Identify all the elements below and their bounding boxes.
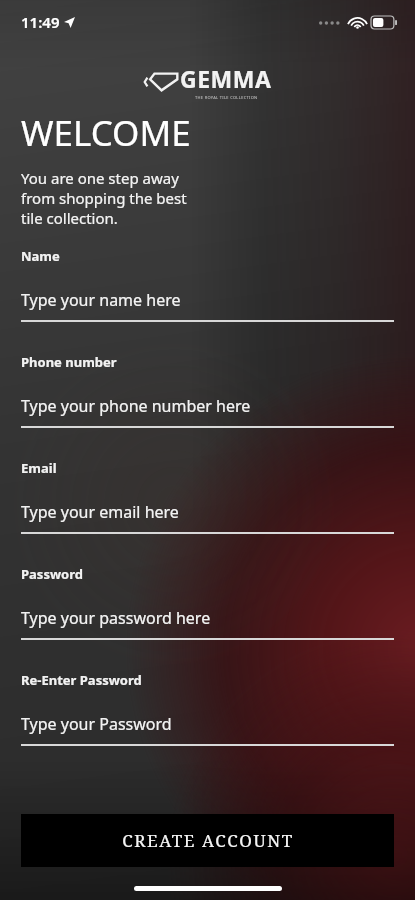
staticText: Type your password here: [21, 607, 211, 629]
button[interactable]: CREATE ACCOUNT: [21, 814, 394, 867]
staticText: Type your email here: [21, 501, 179, 523]
staticText: Type your phone number here: [21, 395, 251, 417]
staticText: Phone number: [21, 353, 117, 371]
button[interactable]: Re-Enter Password: [21, 671, 394, 746]
button[interactable]: Email: [21, 459, 394, 534]
button[interactable]: Password: [21, 565, 394, 640]
staticText: Password: [21, 565, 83, 583]
staticText: Type your name here: [21, 289, 181, 311]
button[interactable]: Phone number: [21, 353, 394, 428]
staticText: THE ROYAL TILE COLLECTION: [195, 95, 258, 100]
staticText: GEMMA: [180, 63, 272, 94]
staticText: You are one step away from shopping the …: [21, 168, 187, 228]
staticText: CREATE ACCOUNT: [122, 829, 294, 852]
staticText: Re-Enter Password: [21, 671, 142, 689]
staticText: WELCOME: [21, 109, 191, 157]
staticText: Type your Password: [21, 713, 172, 735]
staticText: Name: [21, 247, 60, 265]
staticText: 11:49: [21, 12, 60, 32]
button[interactable]: Name: [21, 247, 394, 322]
staticText: Email: [21, 459, 57, 477]
